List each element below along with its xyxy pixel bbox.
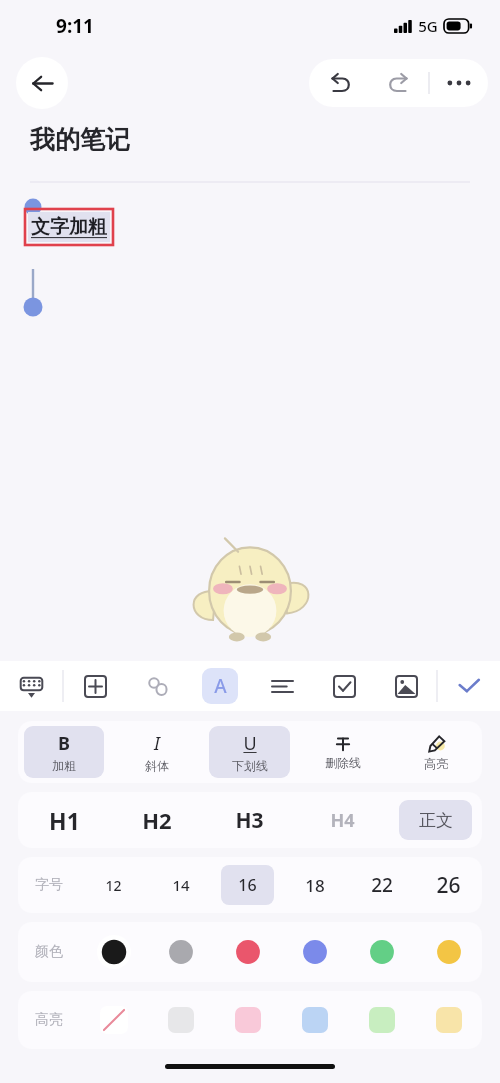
button[interactable]: More options [430, 59, 488, 107]
staticText: 斜体 [145, 758, 169, 773]
button[interactable]: H3 [213, 800, 286, 840]
staticText: 颜色 [35, 943, 63, 961]
button[interactable]: Highlight color [348, 991, 415, 1049]
button[interactable]: Color [281, 922, 348, 982]
button[interactable]: 16 [221, 865, 274, 905]
button[interactable]: Image [375, 661, 437, 711]
button[interactable]: 22 [355, 865, 408, 905]
button[interactable]: Color [214, 922, 281, 982]
staticText: 12 [105, 876, 122, 895]
staticText: B [58, 731, 70, 756]
button[interactable]: Highlight color [415, 991, 482, 1049]
staticText: U [243, 731, 257, 756]
button[interactable]: No highlight [80, 991, 147, 1049]
button[interactable]: Paragraph [251, 661, 313, 711]
button[interactable]: 18 [288, 865, 341, 905]
button[interactable]: Link [127, 661, 189, 711]
staticText: 我的笔记 [30, 124, 130, 155]
button[interactable]: H4 [306, 800, 379, 840]
staticText: 下划线 [232, 758, 268, 773]
button[interactable]: B [24, 726, 104, 778]
staticText: H1 [49, 805, 80, 836]
staticText: 加粗 [52, 758, 76, 773]
button[interactable]: 14 [154, 865, 207, 905]
button[interactable]: Insert [64, 661, 127, 711]
staticText: H2 [142, 805, 172, 835]
staticText: H4 [330, 808, 355, 833]
button[interactable]: Color [147, 922, 214, 982]
button[interactable]: Undo [309, 59, 369, 107]
staticText: 16 [238, 874, 257, 896]
button[interactable]: Checklist [313, 661, 375, 711]
button[interactable]: Color [80, 922, 147, 982]
button[interactable]: Text format [189, 661, 251, 711]
button[interactable]: 高亮 [389, 721, 482, 783]
staticText: 14 [172, 875, 190, 895]
staticText: 高亮 [424, 756, 448, 771]
staticText: 正文 [419, 810, 453, 831]
staticText: 5G [418, 16, 438, 36]
staticText: 22 [371, 872, 393, 898]
button[interactable]: Highlight color [214, 991, 281, 1049]
button[interactable]: 删除线 [296, 721, 389, 783]
button[interactable]: Back [16, 57, 68, 109]
button[interactable]: Highlight color [147, 991, 214, 1049]
button[interactable]: H2 [120, 800, 193, 840]
staticText: 删除线 [325, 755, 361, 770]
button[interactable]: Color [415, 922, 482, 982]
staticText: A [214, 673, 227, 699]
staticText: 文字加粗 [31, 215, 107, 239]
button[interactable]: U [209, 726, 290, 778]
button[interactable]: 26 [422, 865, 475, 905]
button[interactable]: H1 [28, 800, 100, 840]
button[interactable]: Redo [369, 59, 429, 107]
staticText: 字号 [35, 876, 63, 894]
staticText: H3 [235, 806, 264, 835]
button[interactable]: 正文 [399, 800, 472, 840]
button[interactable]: 文字加粗 [31, 215, 107, 239]
button[interactable]: I [116, 726, 197, 778]
button[interactable]: Done [438, 661, 500, 711]
staticText: 26 [436, 871, 461, 900]
button[interactable]: 12 [87, 865, 140, 905]
button[interactable]: Color [348, 922, 415, 982]
button[interactable]: Highlight color [281, 991, 348, 1049]
staticText: 高亮 [35, 1011, 63, 1029]
button[interactable]: Hide keyboard [0, 661, 63, 711]
staticText: 9:11 [56, 13, 94, 39]
staticText: 18 [305, 874, 325, 897]
staticText: I [154, 731, 160, 756]
